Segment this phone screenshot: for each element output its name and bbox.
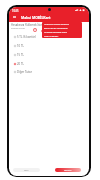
staticText: Kontör/Tutar <box>11 27 25 30</box>
staticText: 5 TL (6 kontör) <box>17 35 36 39</box>
button[interactable]: Information <box>33 28 37 32</box>
button[interactable]: 15 TL <box>14 51 46 58</box>
staticText: Hesabınıza Yüklemek İstediğiniz Tutarı S… <box>11 23 67 27</box>
staticText: Diğer Tutar <box>17 70 32 74</box>
button[interactable]: Devam <box>55 168 81 172</box>
staticText: 15 TL <box>17 53 24 57</box>
staticText: Geri <box>24 169 29 172</box>
button[interactable]: Geri <box>13 168 40 172</box>
button[interactable]: 10 TL <box>14 42 46 49</box>
button[interactable]: Diğer Tutar <box>14 68 46 75</box>
button[interactable]: 20 TL <box>14 60 46 67</box>
staticText: Devam <box>64 169 72 172</box>
staticText: 10 TL <box>17 44 24 48</box>
button[interactable]: 5 TL (6 kontör) <box>14 33 46 40</box>
staticText: Maksi MOBİLKart <box>21 15 51 20</box>
staticText: Anahtara bakiye yükleme işlemi cihaza ok… <box>44 23 74 37</box>
staticText: 20 TL <box>17 62 24 66</box>
button[interactable]: Open navigation menu <box>11 14 17 20</box>
staticText: 10:35 <box>12 9 19 12</box>
